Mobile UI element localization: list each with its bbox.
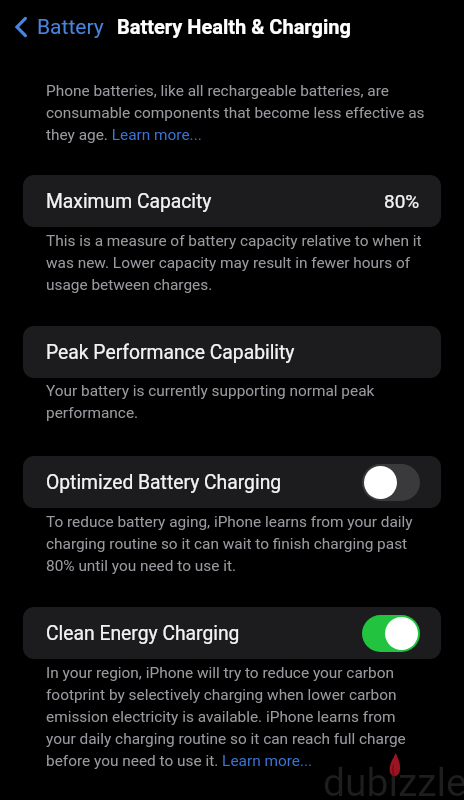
button[interactable]: Back to Battery xyxy=(11,9,104,45)
staticText: Clean Energy Charging xyxy=(46,622,240,645)
staticText: dubizzle xyxy=(323,760,464,800)
staticText: To reduce battery aging, iPhone learns f… xyxy=(46,513,427,575)
button[interactable]: Switch on xyxy=(362,615,420,652)
staticText: Phone batteries, like all rechargeable b… xyxy=(46,82,427,144)
staticText: 80% xyxy=(384,190,420,212)
button[interactable]: Switch off xyxy=(362,464,420,501)
staticText: Peak Performance Capability xyxy=(46,341,295,364)
button[interactable]: Optimized Battery Charging xyxy=(23,456,441,508)
button[interactable]: Clean Energy Charging xyxy=(23,607,441,659)
staticText: Battery Health & Charging xyxy=(117,15,351,38)
staticText: Optimized Battery Charging xyxy=(46,471,282,494)
button[interactable]: Maximum Capacity xyxy=(23,175,441,227)
staticText: This is a measure of battery capacity re… xyxy=(46,232,427,294)
staticText: Battery xyxy=(37,15,104,40)
staticText: In your region, iPhone will try to reduc… xyxy=(46,664,427,770)
button[interactable]: Peak Performance Capability xyxy=(23,326,441,378)
staticText: Your battery is currently supporting nor… xyxy=(46,382,427,422)
staticText: Maximum Capacity xyxy=(46,190,212,213)
